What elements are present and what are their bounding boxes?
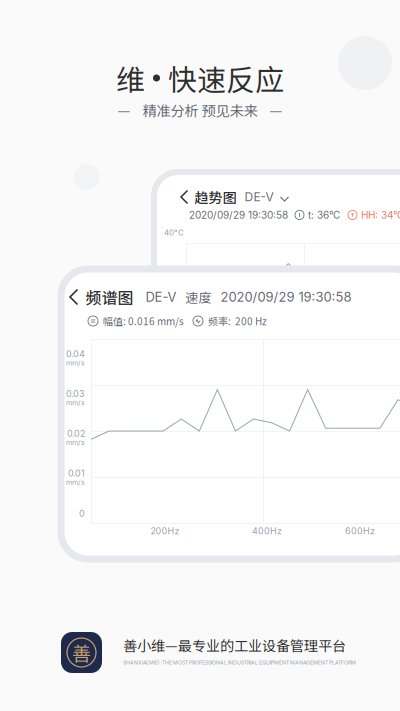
staticText: 幅值: 0.016 mm/s [103,314,184,328]
staticText: SHANXIAOWEI · THE MOST PROFESSIONAL INDU… [123,659,356,666]
staticText: mm/s [66,478,85,486]
staticText: DE-V [145,289,176,305]
staticText: 频谱图 [85,285,133,309]
staticText: 2020/09/29 19:30:58 [220,289,351,305]
staticText: — 精准分析 预见未来 — [117,100,282,120]
staticText: HH: 34°C [361,209,400,221]
staticText: 0 [79,508,85,519]
staticText: 速度 [185,288,211,306]
staticText: 0.04 [66,349,85,359]
staticText: t: 36°C [308,209,340,221]
staticText: mm/s [66,398,85,407]
staticText: 频率: 200 Hz [208,314,267,328]
staticText: 2020/09/29 19:30:58 [189,209,288,221]
staticText: mm/s [66,438,85,447]
staticText: DE-V [244,190,273,204]
staticText: 0.01 [68,468,85,479]
staticText: 0.03 [66,388,85,399]
staticText: 600Hz [345,526,375,536]
staticText: 善小维—最专业的工业设备管理平台 [123,635,346,655]
staticText: 善 [72,639,91,666]
staticText: 快速反应 [168,57,284,99]
staticText: mm/s [66,359,85,367]
staticText: 维 [116,57,145,99]
staticText: 200Hz [150,526,179,536]
staticText: 40°C [164,228,184,237]
staticText: 0.02 [67,428,85,439]
staticText: 趋势图 [194,187,236,207]
staticText: 400Hz [252,526,282,536]
